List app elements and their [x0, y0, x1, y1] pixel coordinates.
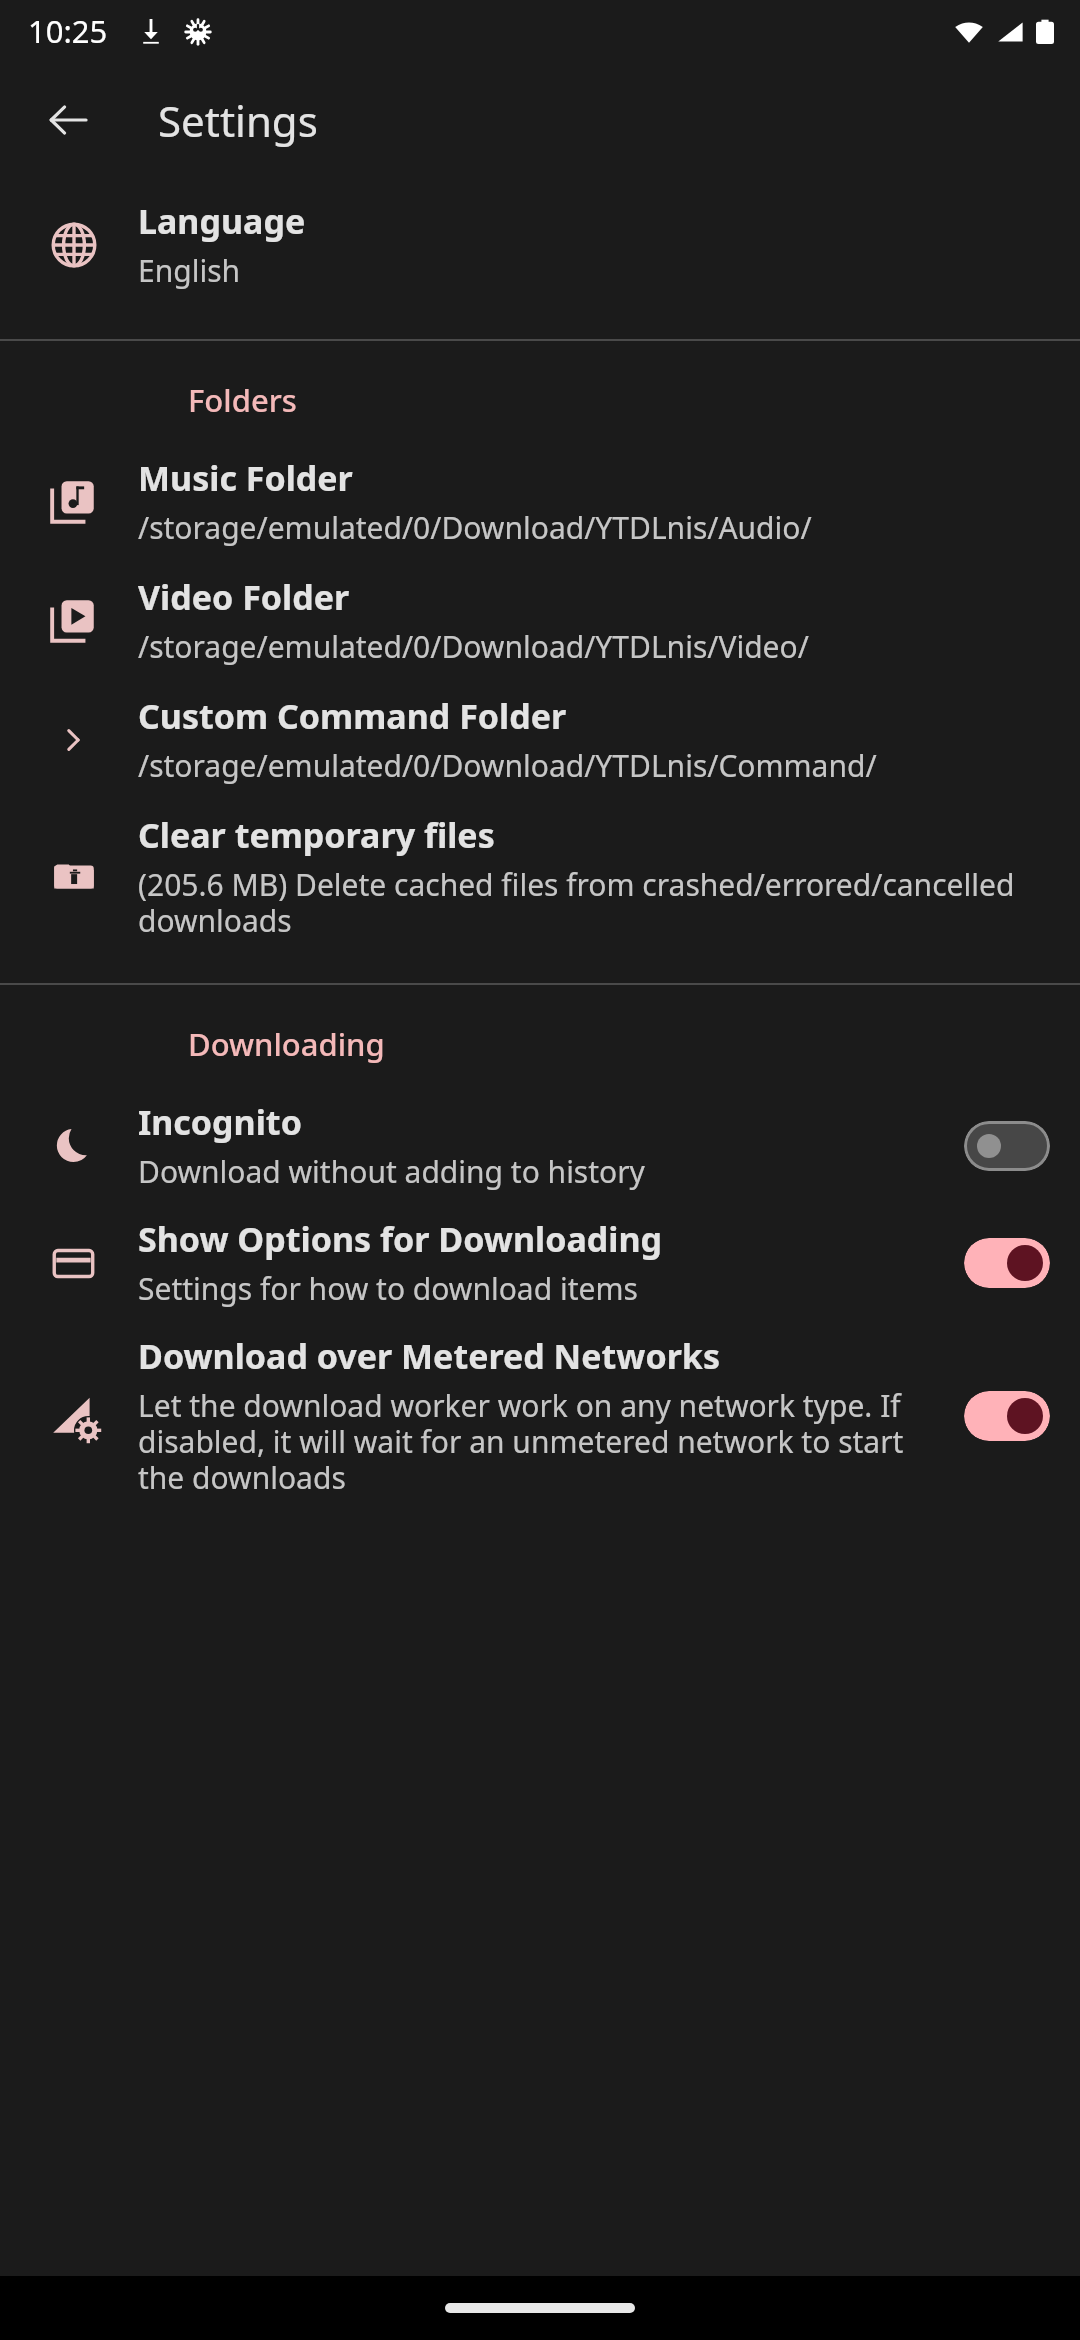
staticText: Music Folder [138, 455, 353, 501]
staticText: Download over Metered Networks [138, 1333, 721, 1379]
button[interactable]: Incognito [0, 1099, 1080, 1192]
staticText: Language [138, 198, 306, 244]
button[interactable]: Language [0, 198, 1080, 291]
staticText: /storage/emulated/0/Download/YTDLnis/Com… [138, 745, 877, 786]
staticText: Download without adding to history [138, 1151, 645, 1192]
staticText: /storage/emulated/0/Download/YTDLnis/Vid… [138, 626, 809, 667]
button[interactable]: Custom Command Folder [0, 693, 1080, 786]
staticText: English [138, 250, 241, 291]
staticText: Let the download worker work on any netw… [138, 1385, 946, 1498]
staticText: Clear temporary files [138, 812, 495, 858]
staticText: 10:25 [28, 10, 108, 52]
staticText: /storage/emulated/0/Download/YTDLnis/Aud… [138, 507, 812, 548]
button[interactable]: Video Folder [0, 574, 1080, 667]
staticText: Settings [158, 92, 318, 149]
staticText: Folders [188, 379, 297, 421]
button[interactable]: On [964, 1238, 1050, 1288]
button[interactable]: Clear temporary files [0, 812, 1080, 941]
button[interactable]: Show Options for Downloading [0, 1216, 1080, 1309]
button[interactable]: Back [32, 84, 104, 156]
button[interactable]: Off [964, 1121, 1050, 1171]
button[interactable]: Music Folder [0, 455, 1080, 548]
button[interactable]: Download over Metered Networks [0, 1333, 1080, 1498]
staticText: (205.6 MB) Delete cached files from cras… [138, 864, 1040, 941]
staticText: Show Options for Downloading [138, 1216, 663, 1262]
staticText: Downloading [188, 1023, 385, 1065]
staticText: Custom Command Folder [138, 693, 567, 739]
staticText: Video Folder [138, 574, 350, 620]
staticText: Incognito [138, 1099, 302, 1145]
button[interactable]: On [964, 1391, 1050, 1441]
staticText: Settings for how to download items [138, 1268, 638, 1309]
